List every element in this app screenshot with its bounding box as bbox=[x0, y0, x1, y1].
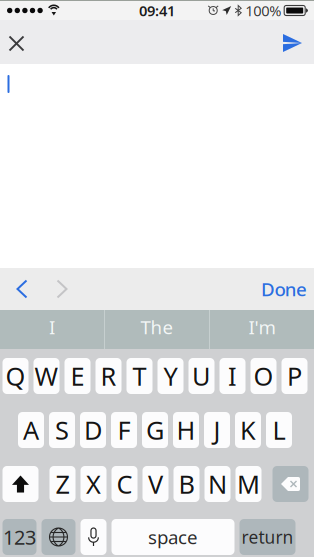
staticText: G bbox=[146, 413, 164, 447]
staticText: P bbox=[287, 359, 302, 393]
staticText: return bbox=[241, 525, 293, 548]
staticText: H bbox=[176, 413, 195, 447]
button[interactable]: C bbox=[111, 466, 137, 502]
staticText: D bbox=[84, 413, 102, 447]
staticText: T bbox=[132, 359, 146, 393]
button[interactable]: P bbox=[281, 358, 307, 394]
button[interactable]: The bbox=[105, 310, 209, 349]
button[interactable]: D bbox=[80, 412, 106, 448]
staticText: V bbox=[148, 467, 163, 501]
button[interactable]: X bbox=[80, 466, 106, 502]
button[interactable]: Shift bbox=[2, 466, 38, 502]
button[interactable]: I bbox=[0, 310, 104, 349]
button[interactable]: N bbox=[204, 466, 230, 502]
button[interactable]: S bbox=[49, 412, 75, 448]
button[interactable]: M bbox=[235, 466, 261, 502]
button[interactable]: Q bbox=[2, 358, 28, 394]
staticText: Q bbox=[5, 359, 25, 393]
staticText: I bbox=[49, 315, 55, 339]
button[interactable]: I'm bbox=[210, 310, 314, 349]
button[interactable]: Send bbox=[277, 20, 308, 64]
button[interactable]: V bbox=[142, 466, 168, 502]
button[interactable]: I bbox=[219, 358, 245, 394]
staticText: C bbox=[116, 467, 132, 501]
staticText: 100% bbox=[245, 1, 281, 20]
staticText: Z bbox=[55, 467, 69, 501]
staticText: The bbox=[140, 315, 173, 339]
staticText: I'm bbox=[248, 315, 275, 339]
button[interactable]: Next keyboard bbox=[41, 519, 75, 555]
staticText: K bbox=[240, 413, 256, 447]
button[interactable]: Dictate bbox=[80, 519, 106, 555]
button[interactable]: Done bbox=[261, 268, 314, 310]
staticText: Y bbox=[163, 359, 177, 393]
button[interactable]: O bbox=[250, 358, 276, 394]
button[interactable]: T bbox=[126, 358, 152, 394]
staticText: M bbox=[237, 467, 260, 501]
button[interactable]: L bbox=[266, 412, 292, 448]
staticText: L bbox=[272, 413, 285, 447]
button[interactable]: A bbox=[18, 412, 44, 448]
staticText: B bbox=[178, 467, 194, 501]
staticText: A bbox=[23, 413, 39, 447]
button[interactable]: G bbox=[142, 412, 168, 448]
button[interactable]: U bbox=[188, 358, 214, 394]
button[interactable]: F bbox=[111, 412, 137, 448]
button[interactable]: Delete bbox=[272, 466, 308, 502]
staticText: 09:41 bbox=[139, 1, 175, 20]
staticText: R bbox=[100, 359, 116, 393]
button[interactable]: J bbox=[204, 412, 230, 448]
button[interactable]: Z bbox=[49, 466, 75, 502]
button[interactable]: E bbox=[64, 358, 90, 394]
button[interactable]: space bbox=[111, 519, 234, 555]
staticText: I bbox=[228, 359, 237, 393]
button[interactable]: R bbox=[95, 358, 121, 394]
button[interactable]: B bbox=[173, 466, 199, 502]
staticText: O bbox=[253, 359, 273, 393]
staticText: S bbox=[55, 413, 69, 447]
staticText: Done bbox=[261, 277, 307, 301]
button[interactable]: Close bbox=[1, 20, 32, 64]
button[interactable]: K bbox=[235, 412, 261, 448]
button[interactable]: Previous field bbox=[2, 268, 42, 310]
button[interactable]: Y bbox=[157, 358, 183, 394]
button[interactable]: W bbox=[33, 358, 59, 394]
staticText: space bbox=[148, 525, 198, 549]
staticText: J bbox=[213, 413, 220, 447]
button[interactable]: Numbers bbox=[2, 519, 36, 555]
button[interactable]: return bbox=[239, 519, 295, 555]
staticText: W bbox=[34, 359, 58, 393]
staticText: U bbox=[192, 359, 211, 393]
staticText: N bbox=[208, 467, 227, 501]
button[interactable]: Next field bbox=[42, 268, 82, 310]
staticText: X bbox=[86, 467, 101, 501]
staticText: 123 bbox=[3, 524, 36, 550]
staticText: F bbox=[117, 413, 130, 447]
button[interactable]: H bbox=[173, 412, 199, 448]
staticText: E bbox=[70, 359, 84, 393]
